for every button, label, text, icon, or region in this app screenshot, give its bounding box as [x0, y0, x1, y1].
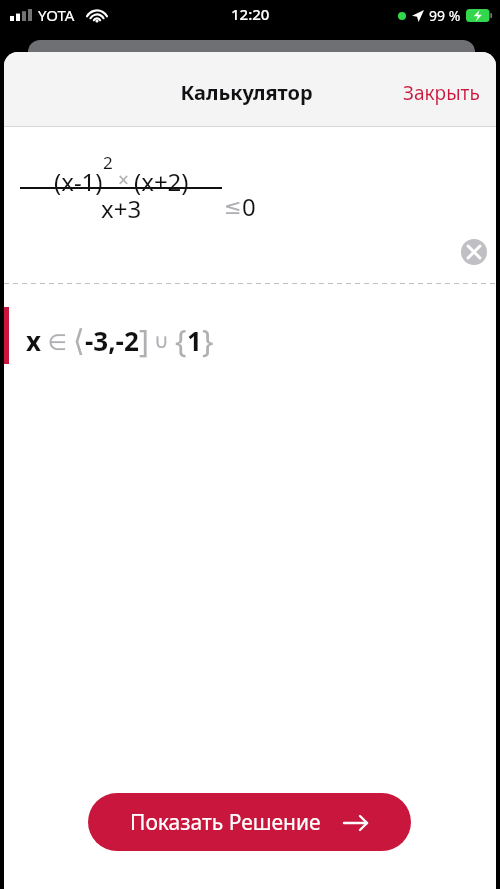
staticText: 99 % [429, 6, 461, 25]
button[interactable]: Очистить [457, 235, 491, 269]
staticText: -3,-2 [85, 323, 139, 358]
staticText: ≤ [224, 195, 242, 219]
staticText: } [202, 320, 214, 361]
button[interactable]: Показать Решение [88, 793, 411, 851]
staticText: 12:20 [231, 4, 270, 24]
button[interactable]: Закрыть [387, 70, 496, 116]
staticText: ∈ [42, 326, 73, 356]
staticText: Закрыть [403, 80, 480, 106]
staticText: x [26, 323, 42, 358]
staticText: YOTA [38, 5, 75, 25]
staticText: x+3 [101, 192, 142, 225]
staticText: Показать Решение [130, 808, 321, 837]
staticText: (x+2) [134, 165, 189, 198]
staticText: 0 [242, 190, 256, 223]
staticText: × [113, 167, 134, 193]
staticText: Калькулятор [180, 79, 313, 106]
staticText: 1 [187, 323, 202, 358]
staticText: 2 [103, 151, 113, 174]
staticText: { [175, 320, 187, 361]
staticText: ⟨ [73, 323, 85, 358]
staticText: ∪ [149, 327, 175, 354]
staticText: (x-1) [54, 165, 103, 198]
staticText: ] [139, 320, 149, 361]
